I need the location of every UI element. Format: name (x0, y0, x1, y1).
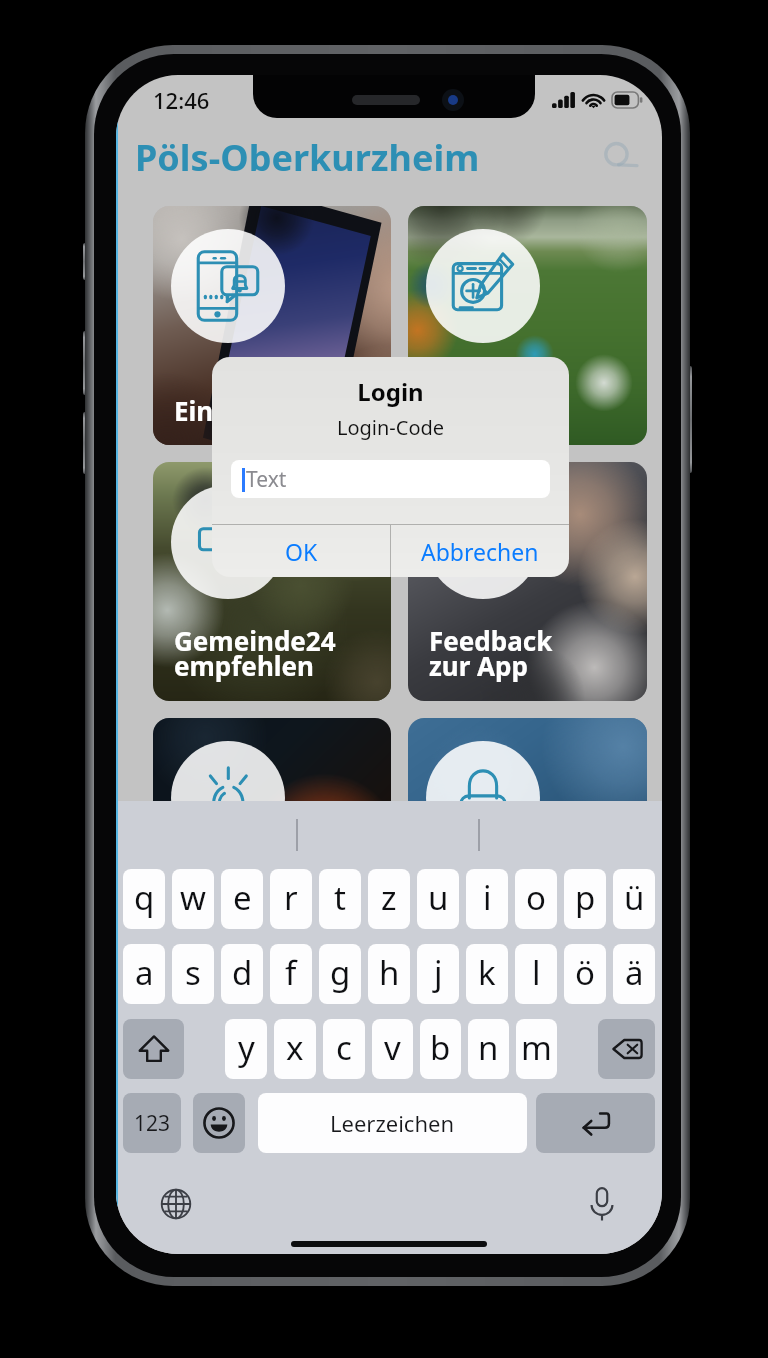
button[interactable]: Ein (153, 206, 391, 445)
staticText: o (526, 875, 546, 920)
button[interactable]: Löschen (598, 1019, 655, 1079)
button[interactable]: k (466, 944, 508, 1004)
staticText: j (434, 950, 443, 995)
button[interactable]: i (466, 869, 508, 929)
button[interactable]: Feedback zur App (408, 462, 647, 701)
button[interactable]: Suche (598, 135, 644, 181)
button[interactable]: u (417, 869, 459, 929)
button[interactable]: Sprache (156, 1184, 196, 1224)
button[interactable]: r (270, 869, 312, 929)
button[interactable]: n (468, 1019, 509, 1079)
button[interactable]: Eingabe (536, 1093, 655, 1153)
button[interactable]: Umschalt (123, 1019, 184, 1079)
staticText: 12:46 (153, 85, 210, 115)
button[interactable]: e (221, 869, 263, 929)
staticText: Login-Code (212, 414, 569, 441)
button[interactable] (408, 718, 647, 957)
button[interactable]: h (368, 944, 410, 1004)
button[interactable]: d (221, 944, 263, 1004)
staticText: OK (285, 536, 318, 567)
staticText: Login (212, 375, 569, 408)
staticText: r (284, 875, 298, 920)
button[interactable]: OK (212, 525, 390, 577)
staticText: s (185, 950, 201, 995)
button[interactable]: ö (564, 944, 606, 1004)
button[interactable]: g (319, 944, 361, 1004)
staticText: v (384, 1025, 401, 1070)
staticText: g (330, 950, 351, 995)
button[interactable]: w (172, 869, 214, 929)
button[interactable]: Gemeinde24 empfehlen (153, 462, 391, 701)
staticText: Abbrechen (421, 536, 539, 567)
staticText: ä (625, 950, 644, 995)
staticText: l (532, 950, 541, 995)
button[interactable]: a (123, 944, 165, 1004)
staticText: ü (624, 875, 645, 920)
staticText: Pöls-Oberkurzheim (135, 133, 480, 182)
button[interactable]: Text (231, 460, 550, 498)
button[interactable]: x (274, 1019, 316, 1079)
staticText: Feedback zur App (429, 623, 553, 684)
staticText: h (379, 950, 400, 995)
button[interactable]: n (408, 206, 647, 445)
button[interactable]: j (417, 944, 459, 1004)
staticText: Gemeinde24 empfehlen (174, 623, 336, 684)
button[interactable] (153, 718, 391, 957)
staticText: u (428, 875, 449, 920)
staticText: e (233, 875, 252, 920)
button[interactable]: ä (613, 944, 655, 1004)
button[interactable]: l (515, 944, 557, 1004)
staticText: p (575, 875, 596, 920)
staticText: 123 (134, 1109, 171, 1138)
button[interactable]: ü (613, 869, 655, 929)
staticText: k (478, 950, 496, 995)
staticText: ö (575, 950, 595, 995)
staticText: y (238, 1025, 255, 1070)
button[interactable]: s (172, 944, 214, 1004)
button[interactable]: Leerzeichen (258, 1093, 527, 1153)
staticText: t (334, 875, 346, 920)
button[interactable]: Emoji (193, 1093, 245, 1153)
button[interactable]: v (372, 1019, 413, 1079)
staticText: i (483, 875, 492, 920)
staticText: Leerzeichen (330, 1108, 455, 1138)
button[interactable]: 123 (123, 1093, 181, 1153)
staticText: n (429, 393, 446, 428)
staticText: Ein (174, 393, 214, 428)
staticText: n (478, 1025, 499, 1070)
button[interactable]: Abbrechen (391, 525, 569, 577)
button[interactable]: z (368, 869, 410, 929)
staticText: Text (246, 465, 287, 494)
staticText: c (336, 1025, 352, 1070)
button[interactable]: q (123, 869, 165, 929)
staticText: d (232, 950, 253, 995)
button[interactable]: t (319, 869, 361, 929)
staticText: w (180, 875, 206, 920)
button[interactable]: y (225, 1019, 267, 1079)
button[interactable]: b (420, 1019, 461, 1079)
button[interactable]: c (323, 1019, 365, 1079)
staticText: m (521, 1025, 552, 1070)
staticText: x (286, 1025, 304, 1070)
button[interactable]: o (515, 869, 557, 929)
staticText: z (381, 875, 397, 920)
button[interactable]: Diktieren (582, 1184, 622, 1224)
button[interactable]: m (516, 1019, 557, 1079)
staticText: b (430, 1025, 451, 1070)
staticText: f (285, 950, 297, 995)
button[interactable]: p (564, 869, 606, 929)
staticText: q (134, 875, 155, 920)
staticText: a (135, 950, 154, 995)
button[interactable]: f (270, 944, 312, 1004)
